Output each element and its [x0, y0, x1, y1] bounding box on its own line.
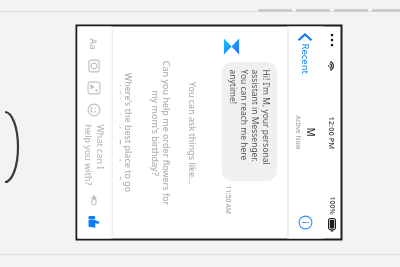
staticText: Where's the best place to go hiking in t… — [119, 72, 134, 192]
button[interactable]: Hi! I'm M, your personal assistant in Me… — [221, 61, 277, 181]
staticText: 11:50 AM — [223, 185, 232, 214]
staticText: Can you help me order flowers for my mom… — [148, 60, 172, 205]
button[interactable]: You can ask things like... — [179, 36, 205, 228]
button[interactable]: Conversation details — [296, 213, 314, 231]
button[interactable]: Photos — [83, 76, 105, 98]
button[interactable]: Stickers — [83, 98, 105, 120]
staticText: 12:00 PM — [326, 116, 336, 149]
button[interactable]: Send a like — [83, 210, 105, 232]
staticText: Hi! I'm M, your personal assistant in Me… — [227, 69, 271, 173]
button[interactable]: Camera — [83, 54, 105, 76]
button[interactable]: Text formatting — [83, 32, 105, 54]
staticText: M — [303, 127, 317, 137]
button[interactable]: Voice message — [83, 188, 105, 210]
staticText: Active Now — [293, 115, 302, 149]
staticText: 100% — [326, 196, 336, 215]
button[interactable]: Recent — [294, 30, 315, 77]
button[interactable]: What can I help you with? — [77, 120, 111, 188]
staticText: You can ask things like... — [186, 81, 198, 184]
button[interactable]: Where's the best place to go hiking in t… — [112, 36, 141, 228]
staticText: Aa — [87, 38, 99, 50]
staticText: What can I help you with? — [82, 124, 106, 188]
staticText: Recent — [298, 43, 311, 74]
button[interactable]: Can you help me order flowers for my mom… — [141, 36, 179, 228]
